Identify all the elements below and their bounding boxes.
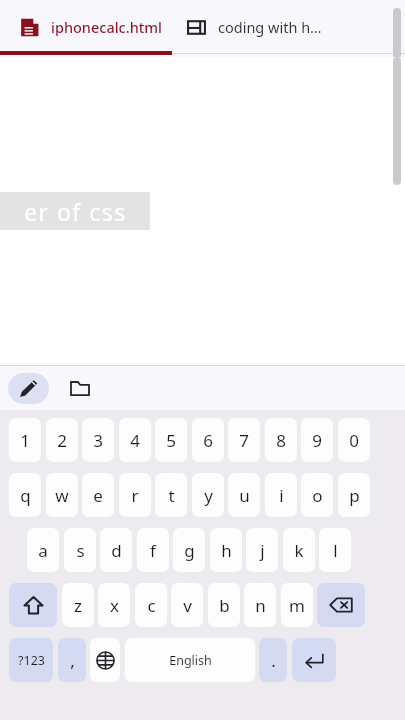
button[interactable]: 3 — [82, 418, 114, 462]
staticText: 6 — [203, 429, 213, 452]
button[interactable]: 0 — [338, 418, 370, 462]
button[interactable]: k — [283, 528, 315, 572]
staticText: d — [111, 539, 122, 562]
button[interactable]: Backspace — [317, 583, 365, 627]
button[interactable]: p — [338, 473, 370, 517]
button[interactable]: b — [208, 583, 240, 627]
button[interactable]: c — [135, 583, 167, 627]
staticText: 8 — [276, 429, 286, 452]
button[interactable]: 7 — [228, 418, 260, 462]
button[interactable]: Window layout — [172, 0, 372, 54]
button[interactable]: English — [125, 638, 255, 682]
staticText: English — [169, 652, 212, 669]
button[interactable]: 4 — [119, 418, 151, 462]
staticText: k — [294, 539, 304, 562]
button[interactable]: Shift — [9, 583, 57, 627]
button[interactable]: n — [244, 583, 276, 627]
staticText: q — [20, 484, 31, 507]
staticText: iphonecalc.html — [51, 17, 162, 37]
staticText: s — [76, 539, 85, 562]
staticText: 4 — [130, 429, 140, 452]
button[interactable]: 6 — [192, 418, 224, 462]
button[interactable]: Change language — [90, 638, 120, 682]
button[interactable]: i — [265, 473, 297, 517]
button[interactable]: 1 — [9, 418, 41, 462]
staticText: ?123 — [18, 652, 45, 669]
staticText: u — [239, 484, 250, 507]
button[interactable]: s — [64, 528, 96, 572]
button[interactable]: d — [100, 528, 132, 572]
other: Document — [20, 18, 39, 37]
staticText: er of css — [24, 196, 127, 227]
staticText: n — [255, 594, 266, 617]
button[interactable]: 8 — [265, 418, 297, 462]
staticText: 2 — [57, 429, 67, 452]
button[interactable]: 9 — [301, 418, 333, 462]
staticText: . — [271, 649, 276, 672]
staticText: l — [333, 539, 338, 562]
button[interactable]: 5 — [155, 418, 187, 462]
staticText: w — [55, 484, 69, 507]
button[interactable]: y — [192, 473, 224, 517]
staticText: j — [260, 539, 265, 562]
button[interactable]: l — [319, 528, 351, 572]
staticText: v — [183, 594, 192, 617]
button[interactable]: r — [119, 473, 151, 517]
staticText: x — [110, 594, 119, 617]
staticText: e — [93, 484, 103, 507]
staticText: h — [221, 539, 232, 562]
staticText: 9 — [312, 429, 322, 452]
button[interactable]: a — [27, 528, 59, 572]
button[interactable]: , — [58, 638, 86, 682]
staticText: i — [279, 484, 284, 507]
button[interactable]: q — [9, 473, 41, 517]
button[interactable]: 2 — [46, 418, 78, 462]
button[interactable]: e — [82, 473, 114, 517]
button[interactable]: x — [98, 583, 130, 627]
staticText: 3 — [93, 429, 103, 452]
button[interactable]: j — [246, 528, 278, 572]
staticText: y — [204, 484, 213, 507]
button[interactable]: t — [155, 473, 187, 517]
button[interactable]: Edit — [8, 373, 49, 404]
button[interactable]: Enter — [292, 638, 336, 682]
button[interactable]: . — [259, 638, 287, 682]
staticText: f — [150, 539, 156, 562]
staticText: t — [168, 484, 175, 507]
staticText: o — [312, 484, 323, 507]
button[interactable]: v — [171, 583, 203, 627]
button[interactable]: m — [281, 583, 313, 627]
button[interactable]: g — [173, 528, 205, 572]
button[interactable]: Document — [0, 0, 172, 54]
button[interactable]: Files — [63, 371, 97, 405]
staticText: 7 — [239, 429, 249, 452]
staticText: a — [38, 539, 48, 562]
other: Window layout — [187, 18, 206, 37]
staticText: coding with h… — [218, 17, 322, 37]
staticText: g — [184, 539, 195, 562]
button[interactable]: f — [137, 528, 169, 572]
button[interactable]: o — [301, 473, 333, 517]
staticText: p — [349, 484, 360, 507]
staticText: c — [147, 594, 156, 617]
staticText: z — [74, 594, 82, 617]
staticText: r — [131, 484, 139, 507]
button[interactable]: w — [46, 473, 78, 517]
button[interactable]: ?123 — [9, 638, 53, 682]
staticText: 5 — [166, 429, 176, 452]
staticText: , — [70, 649, 75, 672]
staticText: b — [219, 594, 230, 617]
button[interactable]: u — [228, 473, 260, 517]
staticText: 1 — [20, 429, 30, 452]
staticText: 0 — [349, 429, 359, 452]
button[interactable]: h — [210, 528, 242, 572]
button[interactable]: z — [62, 583, 94, 627]
staticText: m — [289, 594, 305, 617]
